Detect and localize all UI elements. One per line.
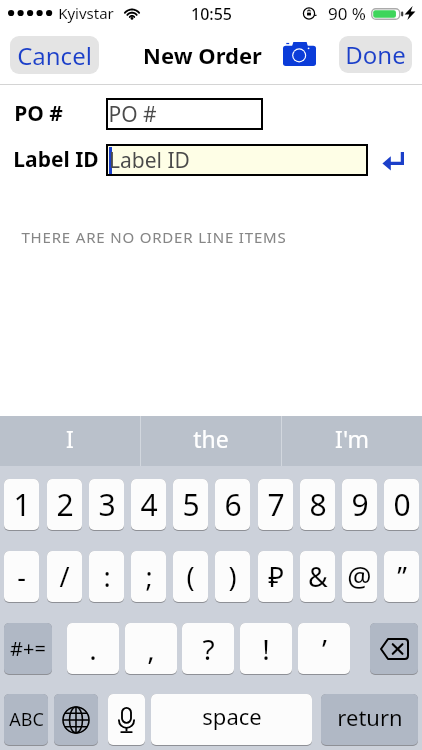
staticText: ;: [145, 558, 153, 595]
staticText: New Order: [143, 40, 262, 68]
button[interactable]: 8: [300, 479, 335, 530]
staticText: Cancel: [17, 39, 92, 72]
button[interactable]: return: [321, 694, 418, 745]
button[interactable]: (: [173, 551, 208, 602]
staticText: @: [347, 558, 372, 595]
staticText: Kyivstar: [58, 3, 114, 23]
button[interactable]: :: [89, 551, 124, 602]
button[interactable]: ₽: [258, 551, 293, 602]
button[interactable]: 2: [47, 479, 82, 530]
staticText: ?: [202, 630, 215, 668]
button[interactable]: ,: [125, 623, 177, 674]
button[interactable]: Cancel: [10, 36, 99, 74]
staticText: 7: [267, 484, 285, 525]
staticText: :: [103, 558, 111, 595]
button[interactable]: ABC: [4, 694, 48, 745]
staticText: ”: [397, 558, 407, 595]
button[interactable]: Take photo: [276, 36, 321, 72]
button[interactable]: #+=: [4, 623, 52, 674]
button[interactable]: Delete: [370, 623, 418, 674]
button[interactable]: space: [151, 694, 312, 745]
staticText: #+=: [10, 635, 46, 662]
button[interactable]: Done: [339, 36, 412, 73]
staticText: &: [308, 558, 328, 595]
staticText: 2: [56, 484, 74, 525]
button[interactable]: /: [47, 551, 82, 602]
button[interactable]: I: [0, 416, 140, 466]
staticText: ): [228, 558, 237, 595]
staticText: PO #: [108, 100, 157, 129]
staticText: PO #: [14, 99, 63, 128]
staticText: ABC: [9, 707, 44, 732]
button[interactable]: ): [215, 551, 250, 602]
staticText: I: [66, 423, 74, 454]
button[interactable]: ;: [131, 551, 166, 602]
staticText: ₽: [268, 558, 284, 595]
staticText: (: [186, 558, 195, 595]
button[interactable]: I'm: [282, 416, 422, 466]
button[interactable]: &: [300, 551, 335, 602]
button[interactable]: -: [4, 551, 39, 602]
staticText: 0: [393, 484, 411, 525]
button[interactable]: ?: [182, 623, 234, 674]
staticText: 90 %: [328, 2, 366, 25]
staticText: return: [337, 702, 403, 732]
staticText: Label ID: [13, 145, 99, 174]
staticText: THERE ARE NO ORDER LINE ITEMS: [21, 227, 287, 247]
button[interactable]: .: [67, 623, 119, 674]
button[interactable]: Dictation: [108, 694, 145, 745]
button[interactable]: Submit label: [378, 148, 407, 174]
staticText: I'm: [335, 423, 369, 454]
staticText: !: [262, 630, 270, 668]
button[interactable]: ’: [298, 623, 350, 674]
button[interactable]: 9: [342, 479, 377, 530]
staticText: 3: [98, 484, 116, 525]
staticText: the: [193, 423, 229, 454]
button[interactable]: 3: [89, 479, 124, 530]
staticText: 5: [182, 484, 200, 525]
staticText: -: [17, 558, 26, 595]
staticText: 9: [351, 484, 369, 525]
button[interactable]: Change language: [54, 694, 98, 745]
staticText: ,: [147, 630, 155, 668]
button[interactable]: ”: [384, 551, 419, 602]
staticText: 10:55: [191, 3, 232, 25]
button[interactable]: 4: [131, 479, 166, 530]
staticText: ’: [322, 630, 327, 668]
staticText: 8: [309, 484, 327, 525]
staticText: 1: [13, 484, 31, 525]
button[interactable]: Label ID: [106, 144, 368, 176]
button[interactable]: 7: [258, 479, 293, 530]
button[interactable]: !: [240, 623, 292, 674]
staticText: Done: [345, 38, 406, 71]
staticText: 4: [140, 484, 158, 525]
button[interactable]: 5: [173, 479, 208, 530]
staticText: 6: [224, 484, 242, 525]
staticText: /: [59, 558, 70, 595]
staticText: Label ID: [109, 146, 190, 175]
staticText: .: [89, 630, 97, 668]
staticText: space: [202, 701, 262, 731]
button[interactable]: PO #: [106, 98, 263, 130]
button[interactable]: 0: [384, 479, 419, 530]
button[interactable]: @: [342, 551, 377, 602]
button[interactable]: the: [141, 416, 281, 466]
button[interactable]: 1: [4, 479, 39, 530]
button[interactable]: 6: [215, 479, 250, 530]
